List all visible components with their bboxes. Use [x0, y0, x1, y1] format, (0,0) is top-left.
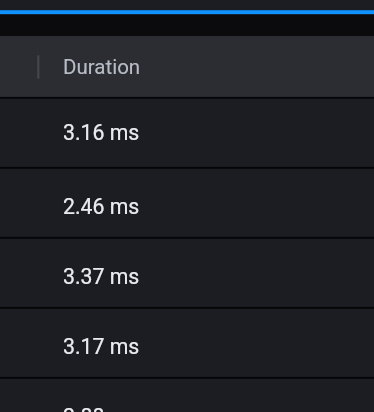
- button[interactable]: 3.17 ms: [0, 308, 374, 378]
- staticText: 3.16 ms: [63, 120, 140, 145]
- button[interactable]: 2.46 ms: [0, 168, 374, 238]
- button[interactable]: 3.37 ms: [0, 238, 374, 308]
- staticText: Duration: [63, 55, 141, 79]
- button[interactable]: 3.16 ms: [0, 98, 374, 168]
- staticText: 3.37 ms: [63, 264, 140, 289]
- staticText: 2.46 ms: [63, 194, 140, 219]
- staticText: 2.88 ms: [63, 404, 140, 412]
- button[interactable]: Duration: [0, 36, 374, 98]
- button[interactable]: 2.88 ms: [0, 378, 374, 412]
- staticText: 3.17 ms: [63, 334, 140, 359]
